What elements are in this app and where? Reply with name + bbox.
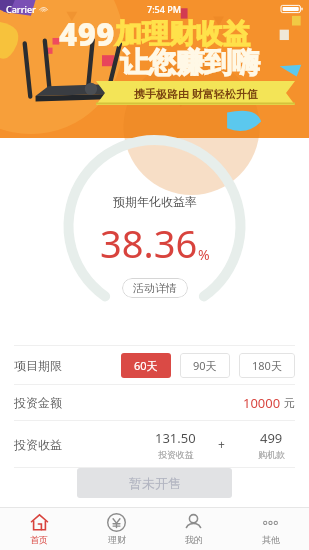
staticText: 其他 — [262, 534, 280, 545]
staticText: 投资收益 — [14, 437, 62, 452]
staticText: 131.50 — [155, 429, 196, 447]
staticText: 活动详情 — [133, 281, 177, 295]
staticText: 元 — [284, 396, 295, 410]
button[interactable]: 我的 — [155, 508, 232, 550]
staticText: 预期年化收益率 — [113, 194, 197, 209]
staticText: 投资收益 — [158, 449, 194, 460]
staticText: 60天 — [134, 358, 158, 373]
staticText: 项目期限 — [14, 358, 62, 373]
staticText: 暂未开售 — [129, 475, 181, 491]
button[interactable]: 理财 — [78, 508, 155, 550]
staticText: 让您赚到嗨 — [120, 45, 260, 80]
staticText: 499 — [59, 13, 115, 55]
staticText: 理财 — [108, 534, 126, 545]
staticText: 90天 — [193, 358, 217, 373]
button[interactable]: 首页 — [0, 508, 78, 550]
staticText: 理财收益 — [142, 17, 250, 51]
staticText: 我的 — [185, 534, 203, 545]
staticText: 38.36 — [100, 217, 198, 269]
staticText: 7:54 PM — [147, 3, 181, 15]
staticText: 首页 — [30, 534, 48, 545]
staticText: 购机款 — [258, 449, 285, 460]
staticText: 10000 — [243, 394, 281, 412]
button[interactable]: 其他 — [232, 508, 309, 550]
button[interactable]: 暂未开售 — [77, 468, 232, 498]
staticText: % — [198, 245, 210, 264]
button[interactable]: 60天 — [121, 353, 171, 378]
button[interactable]: 90天 — [180, 353, 230, 378]
staticText: + — [218, 436, 225, 452]
staticText: Carrier — [6, 3, 36, 15]
staticText: 携手极路由 财富轻松升值 — [134, 86, 258, 101]
staticText: 投资金额 — [14, 395, 62, 410]
button[interactable]: 活动详情 — [122, 278, 188, 298]
button[interactable]: 180天 — [239, 353, 295, 378]
staticText: 加 — [115, 17, 142, 51]
staticText: 499 — [260, 429, 283, 447]
staticText: 180天 — [252, 358, 282, 373]
